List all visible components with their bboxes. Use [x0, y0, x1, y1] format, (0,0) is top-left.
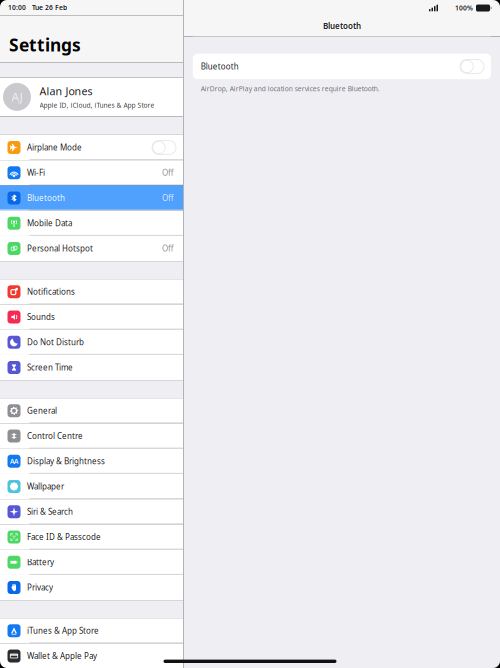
button[interactable]: Bluetooth [193, 54, 491, 79]
staticText: AirDrop, AirPlay and location services r… [201, 84, 380, 93]
staticText: Do Not Disturb [27, 337, 84, 347]
staticText: Siri & Search [27, 506, 73, 517]
button[interactable]: AJ [0, 77, 183, 116]
staticText: Bluetooth [201, 61, 239, 72]
staticText: Personal Hotspot [27, 243, 93, 254]
button[interactable]: iTunes & App Store [0, 618, 183, 643]
staticText: Notifications [27, 286, 75, 297]
staticText: Wallpaper [27, 481, 64, 492]
button[interactable]: AA [0, 449, 183, 474]
button[interactable]: Mobile Data [0, 211, 183, 236]
staticText: Settings [9, 33, 81, 56]
button[interactable]: Bluetooth [0, 185, 183, 211]
staticText: AA [10, 457, 18, 466]
staticText: AJ [11, 89, 22, 105]
staticText: 10:00 [8, 3, 26, 12]
staticText: Tue 26 Feb [32, 3, 67, 12]
staticText: Airplane Mode [27, 142, 82, 153]
staticText: Off [162, 193, 174, 203]
staticText: Screen Time [27, 362, 73, 373]
staticText: Face ID & Passcode [27, 532, 101, 542]
button[interactable]: Privacy [0, 575, 183, 600]
staticText: Apple ID, iCloud, iTunes & App Store [39, 101, 154, 110]
button[interactable]: Do Not Disturb [0, 330, 183, 355]
staticText: Alan Jones [39, 84, 92, 98]
staticText: Mobile Data [27, 218, 72, 228]
button[interactable]: Control Centre [0, 423, 183, 449]
button[interactable]: Wi-Fi [0, 160, 183, 185]
staticText: Control Centre [27, 431, 83, 441]
staticText: Display & Brightness [27, 456, 105, 466]
staticText: Sounds [27, 312, 55, 322]
button[interactable]: Personal Hotspot [0, 236, 183, 261]
staticText: Off [162, 167, 174, 178]
button[interactable]: Screen Time [0, 355, 183, 380]
staticText: Wi-Fi [27, 167, 45, 178]
button[interactable]: Notifications [0, 279, 183, 304]
button[interactable]: Battery [0, 550, 183, 575]
staticText: Bluetooth [27, 193, 65, 203]
staticText: Wallet & Apple Pay [27, 651, 97, 661]
staticText: Privacy [27, 582, 53, 593]
button[interactable]: Wallpaper [0, 474, 183, 499]
button[interactable]: General [0, 398, 183, 423]
staticText: General [27, 405, 57, 416]
button[interactable]: Sounds [0, 304, 183, 330]
staticText: Bluetooth [323, 21, 361, 31]
staticText: Off [162, 243, 174, 254]
button[interactable]: Airplane Mode [0, 135, 183, 160]
button[interactable]: Face ID & Passcode [0, 524, 183, 550]
staticText: 100% [455, 4, 473, 12]
staticText: Battery [27, 557, 54, 567]
button[interactable]: Wallet & Apple Pay [0, 643, 183, 668]
staticText: iTunes & App Store [27, 625, 99, 636]
button[interactable]: Siri & Search [0, 499, 183, 524]
